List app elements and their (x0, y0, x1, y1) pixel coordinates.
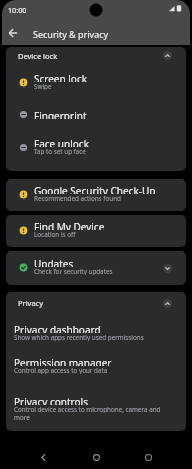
button[interactable] (88, 449, 105, 466)
staticText: Google Security Check-Up (34, 184, 156, 194)
button[interactable] (35, 449, 52, 466)
button[interactable]: Device lock (6, 47, 186, 66)
staticText: Face unlock (34, 137, 89, 147)
staticText: Show which apps recently used permission… (14, 333, 144, 341)
staticText: Control app access to your data (14, 366, 108, 374)
button[interactable]: Privacy (6, 292, 186, 314)
button[interactable]: Fingerprint (6, 98, 186, 131)
staticText: Privacy controls (14, 395, 88, 405)
button[interactable] (140, 449, 157, 466)
staticText: Privacy dashboard (14, 323, 101, 333)
staticText: Screen lock (34, 72, 88, 82)
button[interactable]: Screen lock (6, 66, 186, 98)
button[interactable]: Updates (6, 251, 186, 285)
staticText: Control device access to microphone, cam… (14, 405, 161, 413)
button[interactable]: Privacy dashboard (6, 314, 186, 351)
staticText: Swipe (34, 82, 52, 90)
staticText: Privacy (18, 298, 163, 308)
button[interactable]: Find My Device (6, 215, 186, 247)
staticText: more (14, 413, 30, 421)
button[interactable] (4, 24, 22, 42)
staticText: Fingerprint (34, 109, 87, 119)
staticText: Security & privacy (33, 28, 109, 40)
staticText: Tap to set up face (34, 147, 86, 155)
button[interactable]: Face unlock (6, 131, 186, 163)
staticText: Check for security updates (34, 267, 113, 275)
staticText: Find My Device (34, 220, 105, 230)
staticText: Recommended actions found (34, 194, 121, 202)
button[interactable]: Privacy controls (6, 380, 186, 431)
button[interactable]: Google Security Check-Up (6, 179, 186, 211)
staticText: Location is off (34, 230, 76, 238)
staticText: Device lock (18, 51, 163, 61)
button[interactable]: Permission manager (6, 351, 186, 380)
staticText: Updates (34, 257, 74, 267)
staticText: Permission manager (14, 356, 112, 366)
staticText: 10:00 (8, 5, 27, 15)
